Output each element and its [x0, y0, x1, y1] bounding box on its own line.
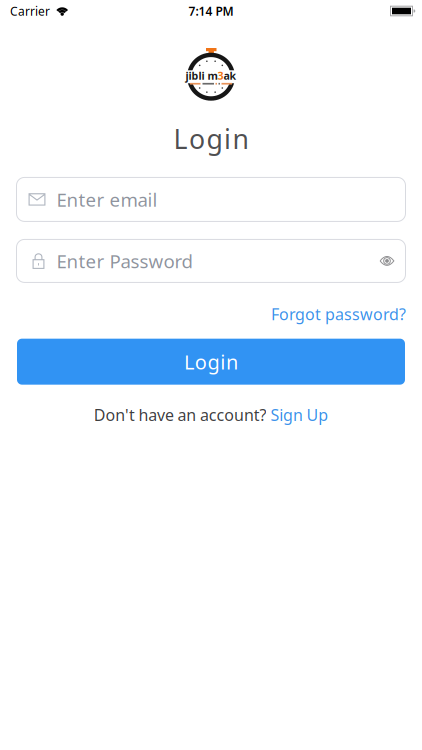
- staticText: ak: [223, 68, 236, 83]
- staticText: Carrier: [10, 3, 50, 19]
- staticText: Forgot password?: [271, 303, 406, 325]
- staticText: Login: [184, 348, 238, 375]
- staticText: 3: [217, 68, 223, 83]
- button[interactable]: Login: [17, 339, 405, 385]
- staticText: Don't have an account?: [94, 404, 266, 425]
- staticText: Sign Up: [270, 404, 328, 425]
- button[interactable]: Sign Up: [270, 404, 328, 425]
- button[interactable]: Forgot password?: [271, 303, 406, 325]
- staticText: 7:14 PM: [188, 3, 233, 19]
- staticText: Enter email: [56, 187, 157, 212]
- staticText: Login: [173, 121, 248, 156]
- staticText: Enter Password: [56, 248, 192, 273]
- button[interactable]: Show password: [379, 255, 405, 266]
- staticText: jibli m: [185, 68, 217, 83]
